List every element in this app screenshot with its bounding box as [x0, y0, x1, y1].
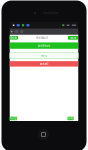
- button[interactable]: continue: [10, 42, 78, 49]
- staticText: Back: [10, 36, 17, 39]
- staticText: help: [10, 117, 17, 120]
- button[interactable]: info: [67, 117, 74, 120]
- staticText: more: [40, 54, 47, 57]
- staticText: continue: [37, 44, 50, 47]
- staticText: Next: [70, 36, 76, 39]
- button[interactable]: Back: [9, 36, 18, 40]
- button[interactable]: cancel: [10, 61, 78, 67]
- button[interactable]: more: [10, 52, 78, 59]
- staticText: checkout: [36, 36, 48, 39]
- staticText: cancel: [39, 62, 48, 66]
- button[interactable]: Next: [68, 36, 78, 40]
- staticText: info: [68, 117, 74, 120]
- button[interactable]: help: [10, 117, 17, 120]
